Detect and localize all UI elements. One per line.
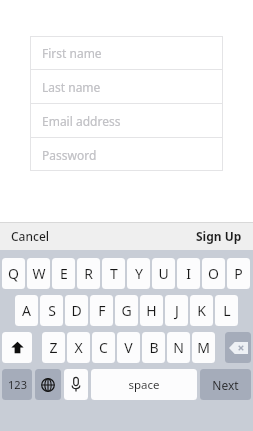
button[interactable]: M <box>192 332 215 363</box>
button[interactable]: X <box>67 332 90 363</box>
button[interactable]: D <box>65 295 88 326</box>
staticText: E <box>60 264 68 283</box>
staticText: Cancel <box>11 228 50 244</box>
staticText: G <box>121 301 132 320</box>
staticText: V <box>124 338 133 357</box>
button[interactable]: H <box>140 295 163 326</box>
button[interactable]: G <box>115 295 138 326</box>
button[interactable]: Shift <box>2 332 32 363</box>
button[interactable]: V <box>117 332 140 363</box>
staticText: N <box>173 338 184 357</box>
staticText: K <box>197 301 206 320</box>
button[interactable]: Backspace <box>225 332 251 363</box>
button[interactable]: L <box>215 295 238 326</box>
button[interactable]: 123 <box>2 369 32 400</box>
staticText: Z <box>49 338 58 357</box>
staticText: Q <box>8 264 19 283</box>
button[interactable]: T <box>102 258 125 289</box>
staticText: H <box>146 301 157 320</box>
staticText: I <box>186 264 191 283</box>
button[interactable]: First name <box>30 36 223 69</box>
button[interactable]: Password <box>30 138 223 171</box>
button[interactable]: B <box>142 332 165 363</box>
staticText: Last name <box>42 79 101 95</box>
staticText: M <box>197 338 210 357</box>
staticText: Sign Up <box>196 228 242 244</box>
button[interactable]: Voice input <box>64 369 88 400</box>
button[interactable]: J <box>165 295 188 326</box>
staticText: First name <box>42 45 102 61</box>
button[interactable]: Email address <box>30 104 223 137</box>
button[interactable]: space <box>91 369 197 400</box>
staticText: D <box>71 301 82 320</box>
staticText: F <box>98 301 106 320</box>
button[interactable]: K <box>190 295 213 326</box>
staticText: Email address <box>42 113 121 129</box>
staticText: Next <box>212 377 239 393</box>
staticText: X <box>74 338 83 357</box>
staticText: A <box>22 301 31 320</box>
staticText: 123 <box>8 377 27 392</box>
button[interactable]: A <box>15 295 38 326</box>
button[interactable]: Cancel <box>0 222 61 250</box>
staticText: Password <box>42 147 97 163</box>
staticText: T <box>110 264 118 283</box>
button[interactable]: S <box>40 295 63 326</box>
button[interactable]: N <box>167 332 190 363</box>
button[interactable]: R <box>77 258 100 289</box>
button[interactable]: Y <box>127 258 150 289</box>
button[interactable]: Q <box>2 258 25 289</box>
button[interactable]: E <box>52 258 75 289</box>
button[interactable]: P <box>227 258 250 289</box>
button[interactable]: I <box>177 258 200 289</box>
staticText: O <box>208 264 219 283</box>
staticText: J <box>175 301 179 320</box>
staticText: Y <box>135 264 143 283</box>
button[interactable]: O <box>202 258 225 289</box>
staticText: B <box>149 338 159 357</box>
button[interactable]: Change keyboard <box>35 369 61 400</box>
staticText: R <box>84 264 93 283</box>
button[interactable]: Next <box>200 369 251 400</box>
button[interactable]: C <box>92 332 115 363</box>
button[interactable]: U <box>152 258 175 289</box>
button[interactable]: W <box>27 258 50 289</box>
button[interactable]: F <box>90 295 113 326</box>
staticText: C <box>99 338 108 357</box>
button[interactable]: Sign Up <box>185 222 253 250</box>
staticText: W <box>32 264 46 283</box>
staticText: S <box>48 301 56 320</box>
button[interactable]: Z <box>42 332 65 363</box>
staticText: L <box>223 301 231 320</box>
button[interactable]: Last name <box>30 70 223 103</box>
staticText: P <box>234 264 243 283</box>
staticText: space <box>128 377 160 393</box>
staticText: U <box>158 264 169 283</box>
